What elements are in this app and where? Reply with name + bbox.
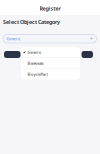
staticText: Select Object Category <box>3 18 60 26</box>
staticText: Generic <box>6 36 20 41</box>
button[interactable]: BicyclePart <box>21 69 80 79</box>
staticText: BicyclePart <box>27 71 47 77</box>
staticText: Generic <box>27 50 41 55</box>
button[interactable]: Banknote <box>21 58 80 69</box>
button[interactable]: Generic <box>3 34 96 43</box>
staticText: Banknote <box>27 61 43 66</box>
staticText: Register <box>39 5 60 12</box>
button[interactable]: Generic <box>21 47 80 58</box>
